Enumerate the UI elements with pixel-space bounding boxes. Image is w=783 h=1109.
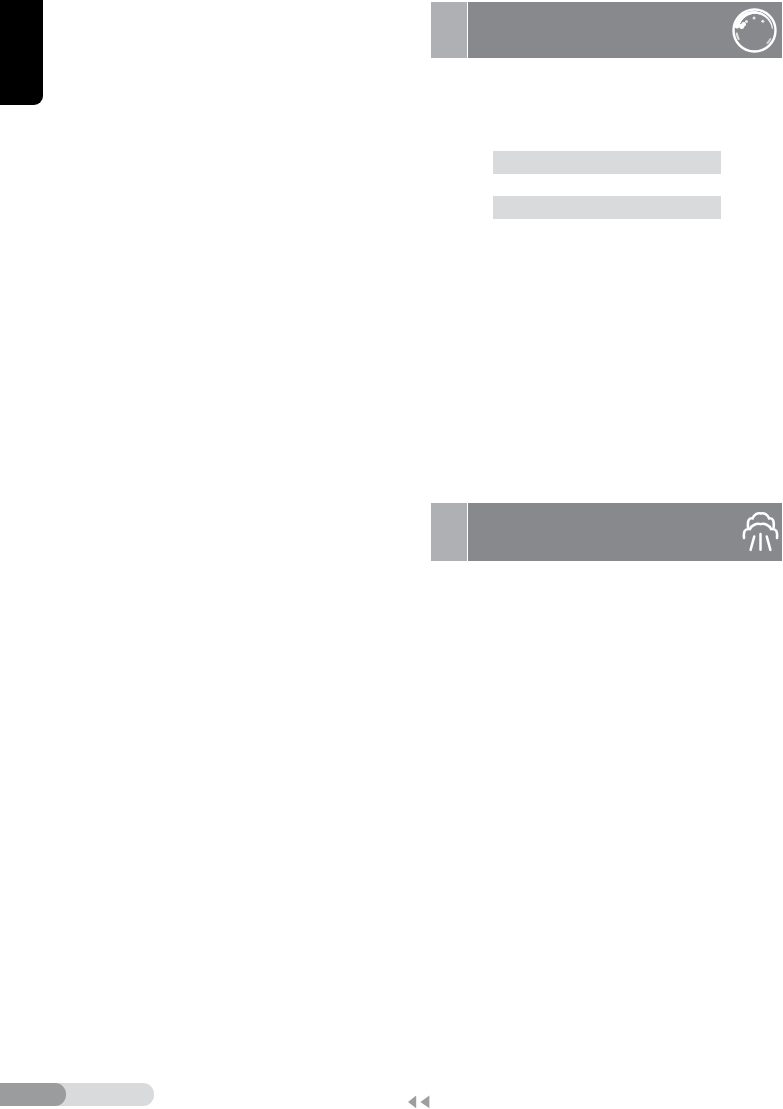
other: Weather conditions xyxy=(732,8,777,53)
button[interactable]: Rain forecast xyxy=(431,503,782,561)
button[interactable]: Weather conditions xyxy=(431,2,782,58)
button[interactable]: Rewind xyxy=(404,1092,434,1109)
button[interactable] xyxy=(0,1083,154,1106)
other: Rain forecast xyxy=(744,513,777,551)
button[interactable] xyxy=(0,0,43,105)
